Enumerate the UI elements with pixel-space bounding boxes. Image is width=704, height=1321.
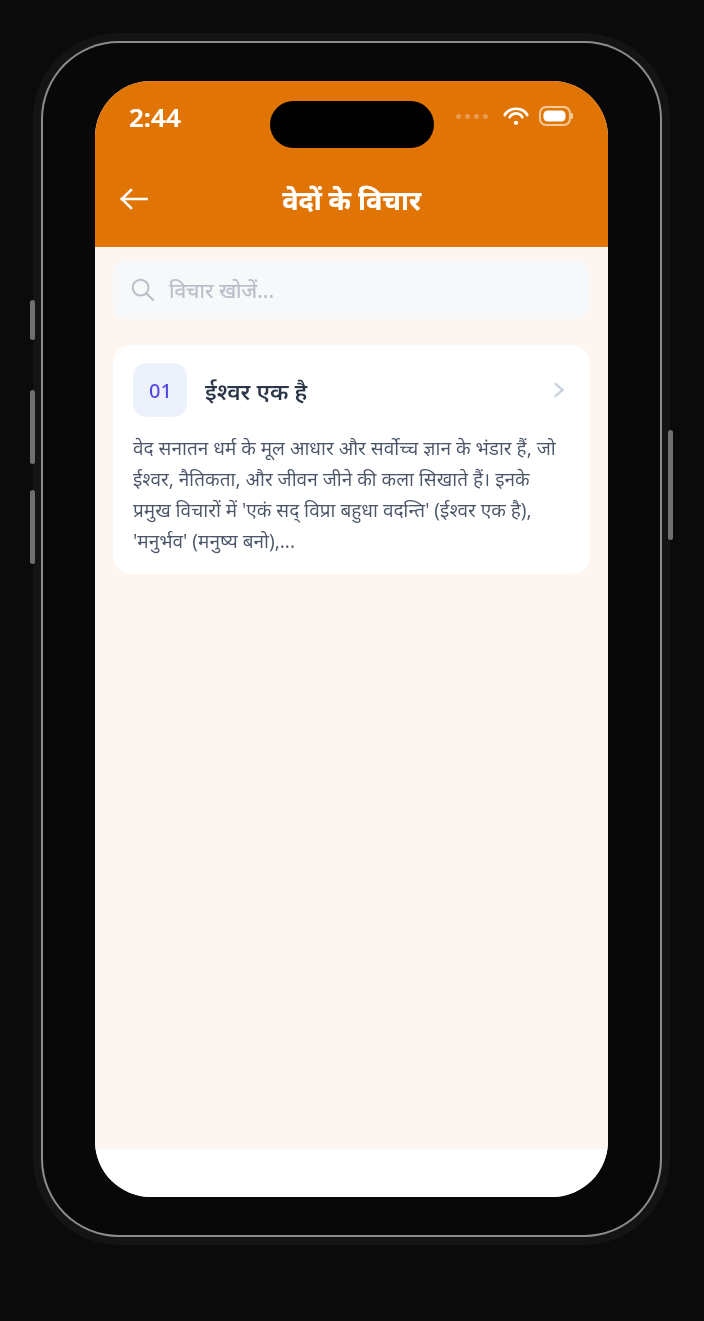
button[interactable]: विचार खोजें... [113, 261, 590, 319]
button[interactable]: 01 [113, 345, 590, 574]
staticText: वेदों के विचार [282, 181, 421, 218]
staticText: 2:44 [129, 99, 181, 134]
staticText: 01 [149, 377, 172, 404]
staticText: ईश्वर एक है [205, 375, 548, 406]
button[interactable]: Back [107, 172, 161, 226]
staticText: वेद सनातन धर्म के मूल आधार और सर्वोच्च ज… [133, 435, 570, 554]
staticText: विचार खोजें... [169, 276, 275, 305]
